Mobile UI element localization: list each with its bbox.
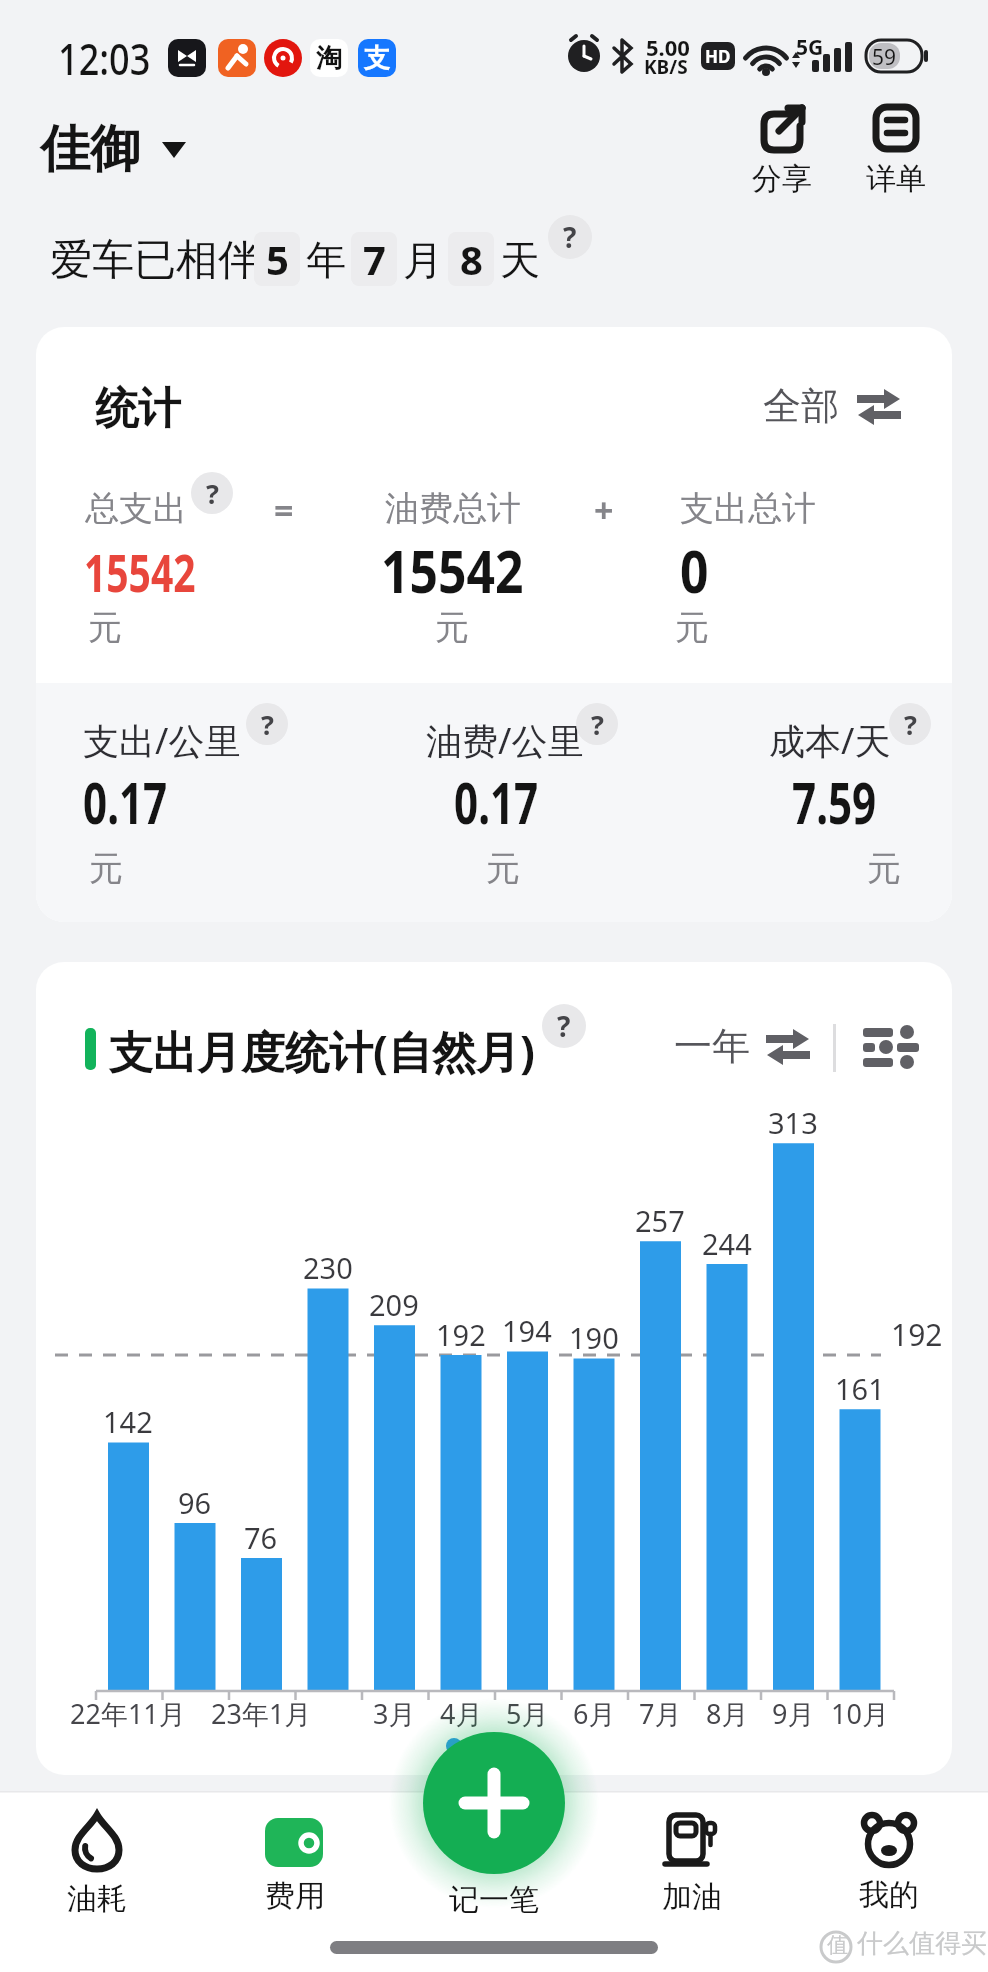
staticText: 209 xyxy=(369,1285,419,1324)
button[interactable]: 全部 xyxy=(763,382,901,430)
button[interactable]: 我的 xyxy=(839,1812,939,1914)
staticText: 194 xyxy=(502,1311,552,1350)
staticText: 313 xyxy=(768,1103,818,1142)
staticText: 加油 xyxy=(662,1878,722,1916)
staticText: 9月 xyxy=(772,1695,815,1732)
staticText: 3月 xyxy=(373,1695,416,1732)
staticText: 元 xyxy=(435,606,469,649)
staticText: 爱车已相伴 xyxy=(50,234,260,287)
staticText: 142 xyxy=(103,1402,153,1441)
staticText: 22年11月 xyxy=(70,1695,186,1732)
staticText: 元 xyxy=(675,606,709,649)
button[interactable]: 油耗 xyxy=(47,1812,147,1918)
button[interactable]: 加油 xyxy=(642,1812,742,1916)
button[interactable] xyxy=(423,1732,565,1874)
staticText: 8月 xyxy=(706,1695,749,1732)
staticText: = xyxy=(274,487,294,533)
button[interactable]: 详单 xyxy=(866,104,926,190)
button[interactable]: ? xyxy=(191,472,233,514)
staticText: 元 xyxy=(867,847,901,890)
staticText: 10月 xyxy=(831,1695,889,1732)
staticText: 元 xyxy=(89,847,123,890)
staticText: 5.00 xyxy=(646,32,690,62)
staticText: 统计 xyxy=(95,382,181,436)
staticText: ? xyxy=(557,1007,571,1045)
staticText: ? xyxy=(563,218,577,256)
staticText: 一年 xyxy=(674,1022,750,1070)
staticText: 淘 xyxy=(316,42,342,75)
staticText: 分享 xyxy=(752,160,812,198)
staticText: 12:03 xyxy=(58,28,151,88)
staticText: 油耗 xyxy=(67,1880,127,1918)
staticText: 230 xyxy=(303,1248,353,1287)
staticText: 成本/天 xyxy=(769,716,891,765)
staticText: 192 xyxy=(891,1314,943,1355)
staticText: 192 xyxy=(436,1315,486,1354)
staticText: 257 xyxy=(635,1201,685,1240)
staticText: 0 xyxy=(680,529,709,611)
staticText: 15542 xyxy=(84,536,196,607)
staticText: 佳御 xyxy=(40,118,140,181)
staticText: KB/S xyxy=(644,54,688,80)
staticText: 支出/公里 xyxy=(83,716,241,765)
staticText: 元 xyxy=(486,847,520,890)
button[interactable]: 费用 xyxy=(245,1818,345,1915)
button[interactable]: ? xyxy=(889,703,931,745)
staticText: 支出月度统计(自然月) xyxy=(109,1021,535,1081)
staticText: 190 xyxy=(569,1318,619,1357)
staticText: HD xyxy=(705,45,731,68)
staticText: 15542 xyxy=(381,529,524,611)
staticText: 23年1月 xyxy=(211,1695,312,1732)
staticText: ? xyxy=(591,706,604,743)
button[interactable]: 一年 xyxy=(674,1022,810,1070)
staticText: 7 xyxy=(363,232,386,286)
staticText: 我的 xyxy=(859,1876,919,1914)
button[interactable] xyxy=(863,1028,919,1068)
staticText: 96 xyxy=(178,1483,212,1522)
staticText: 支出总计 xyxy=(680,487,816,530)
staticText: 5月 xyxy=(506,1695,549,1732)
staticText: 记一笔 xyxy=(449,1881,539,1919)
staticText: 244 xyxy=(702,1224,752,1263)
staticText: 8 xyxy=(460,232,483,286)
staticText: 详单 xyxy=(866,160,926,198)
staticText: ? xyxy=(206,475,219,512)
staticText: 油费总计 xyxy=(385,487,521,530)
staticText: 161 xyxy=(835,1369,885,1408)
staticText: 天 xyxy=(500,235,540,285)
staticText: 什么值得买 xyxy=(857,1927,987,1960)
staticText: 年 xyxy=(306,235,346,285)
staticText: 5G xyxy=(796,33,824,62)
staticText: 月 xyxy=(403,235,443,285)
button[interactable]: ? xyxy=(542,1004,586,1048)
staticText: 7.59 xyxy=(792,763,876,841)
staticText: 值 xyxy=(827,1932,848,1958)
staticText: 76 xyxy=(244,1518,278,1557)
staticText: 油费/公里 xyxy=(426,716,584,765)
staticText: 元 xyxy=(88,606,122,649)
staticText: 59 xyxy=(872,43,897,69)
staticText: 4月 xyxy=(440,1695,483,1732)
staticText: 0.17 xyxy=(454,763,538,841)
staticText: + xyxy=(594,487,614,533)
staticText: ? xyxy=(261,706,274,743)
staticText: 支 xyxy=(364,42,390,75)
staticText: 总支出 xyxy=(85,487,187,530)
button[interactable]: ? xyxy=(246,703,288,745)
staticText: 6月 xyxy=(573,1695,616,1732)
button[interactable]: ? xyxy=(576,703,618,745)
staticText: 0.17 xyxy=(83,763,167,841)
staticText: 费用 xyxy=(265,1877,325,1915)
staticText: 7月 xyxy=(639,1695,682,1732)
button[interactable]: ? xyxy=(548,215,592,259)
staticText: ? xyxy=(904,706,917,743)
staticText: 全部 xyxy=(763,382,839,430)
button[interactable]: 分享 xyxy=(752,104,812,190)
staticText: 5 xyxy=(266,232,289,286)
button[interactable]: 佳御 xyxy=(40,118,186,181)
